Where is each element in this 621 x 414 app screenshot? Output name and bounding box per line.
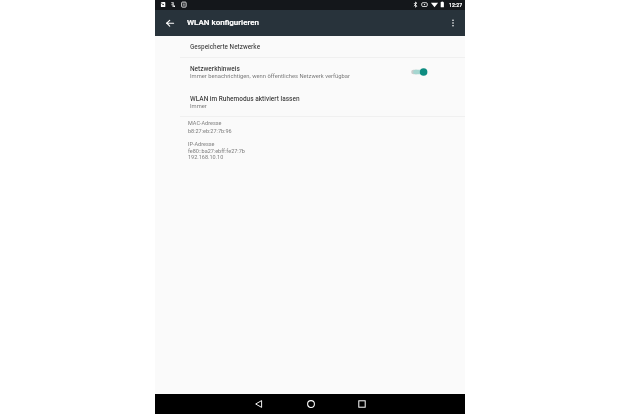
button[interactable]: Netzwerkhinweis bbox=[155, 58, 465, 82]
button[interactable]: More options bbox=[441, 10, 465, 36]
button[interactable]: Home bbox=[299, 394, 323, 414]
staticText: fe80::ba27:ebff:fe27:7b bbox=[188, 148, 245, 154]
staticText: b8:27:eb:27:7b:96 bbox=[188, 128, 232, 134]
button[interactable]: Back bbox=[247, 394, 271, 414]
staticText: Immer bbox=[190, 103, 207, 110]
staticText: Netzwerkhinweis bbox=[190, 65, 240, 73]
staticText: Gespeicherte Netzwerke bbox=[190, 43, 261, 51]
staticText: WLAN im Ruhemodus aktiviert lassen bbox=[190, 95, 300, 103]
button[interactable]: WLAN im Ruhemodus aktiviert lassen bbox=[155, 86, 465, 112]
staticText: IP-Adresse bbox=[188, 141, 215, 147]
button[interactable]: Recent apps bbox=[350, 394, 374, 414]
staticText: WLAN konfigurieren bbox=[187, 18, 259, 27]
staticText: 12:27 bbox=[449, 2, 463, 8]
button[interactable]: Navigate up bbox=[158, 10, 181, 36]
staticText: 192.168.10.10 bbox=[188, 154, 224, 160]
button[interactable]: Gespeicherte Netzwerke bbox=[155, 36, 465, 58]
button[interactable]: Network notification switch bbox=[399, 59, 437, 81]
staticText: Immer benachrichtigen, wenn öffentliches… bbox=[190, 73, 350, 80]
staticText: MAC-Adresse bbox=[188, 120, 222, 126]
